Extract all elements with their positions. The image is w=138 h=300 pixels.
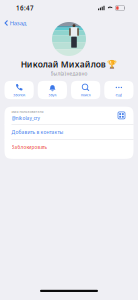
button[interactable]: имя пользователя	[4, 107, 133, 124]
staticText: 16:47	[16, 4, 34, 12]
staticText: звонок	[13, 92, 25, 97]
staticText: @nikolay_cry	[11, 115, 39, 121]
button[interactable]: поиск	[71, 81, 100, 99]
button[interactable]: звук	[38, 81, 67, 99]
staticText: поиск	[81, 92, 91, 97]
staticText: Назад	[10, 19, 27, 27]
staticText: Добавить в контакты	[11, 129, 63, 135]
button[interactable]: Добавить в контакты	[4, 125, 133, 139]
staticText: имя пользователя	[11, 109, 43, 114]
button[interactable]: Заблокировать	[4, 140, 133, 159]
staticText: был(а) недавно	[50, 70, 87, 77]
staticText: Заблокировать	[11, 144, 46, 150]
button[interactable]: Назад	[0, 16, 27, 30]
button[interactable]: ещё	[104, 81, 133, 99]
staticText: 🏆	[107, 60, 117, 69]
staticText: Николай Михайлов	[21, 58, 106, 70]
staticText: звук	[48, 92, 56, 97]
button[interactable]: звонок	[4, 81, 34, 99]
staticText: ещё	[115, 92, 122, 97]
